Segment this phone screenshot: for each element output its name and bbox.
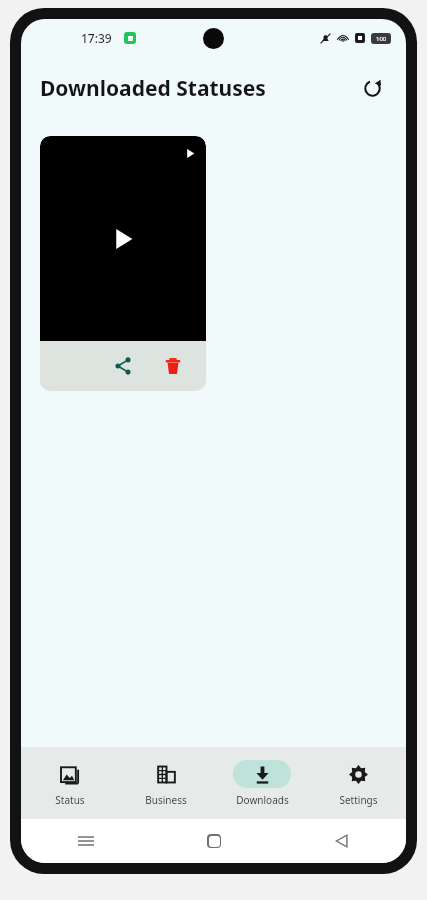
button[interactable]: Status — [21, 747, 118, 819]
button[interactable]: Share — [104, 347, 142, 385]
button[interactable]: Share — [40, 136, 206, 391]
button[interactable]: Business — [118, 747, 214, 819]
staticText: Status — [55, 793, 85, 807]
staticText: Downloaded Statuses — [40, 74, 266, 103]
button[interactable]: Back — [278, 819, 406, 863]
button[interactable]: Refresh — [352, 68, 392, 108]
staticText: Settings — [339, 793, 378, 807]
button[interactable]: Downloads — [214, 747, 310, 819]
staticText: 100 — [376, 35, 387, 43]
staticText: Downloads — [236, 793, 289, 807]
staticText: Business — [145, 793, 187, 807]
button[interactable]: Settings — [310, 747, 406, 819]
button[interactable]: Recents — [21, 819, 150, 863]
button[interactable]: Delete — [154, 347, 192, 385]
staticText: 17:39 — [81, 30, 112, 46]
button[interactable]: Home — [150, 819, 278, 863]
